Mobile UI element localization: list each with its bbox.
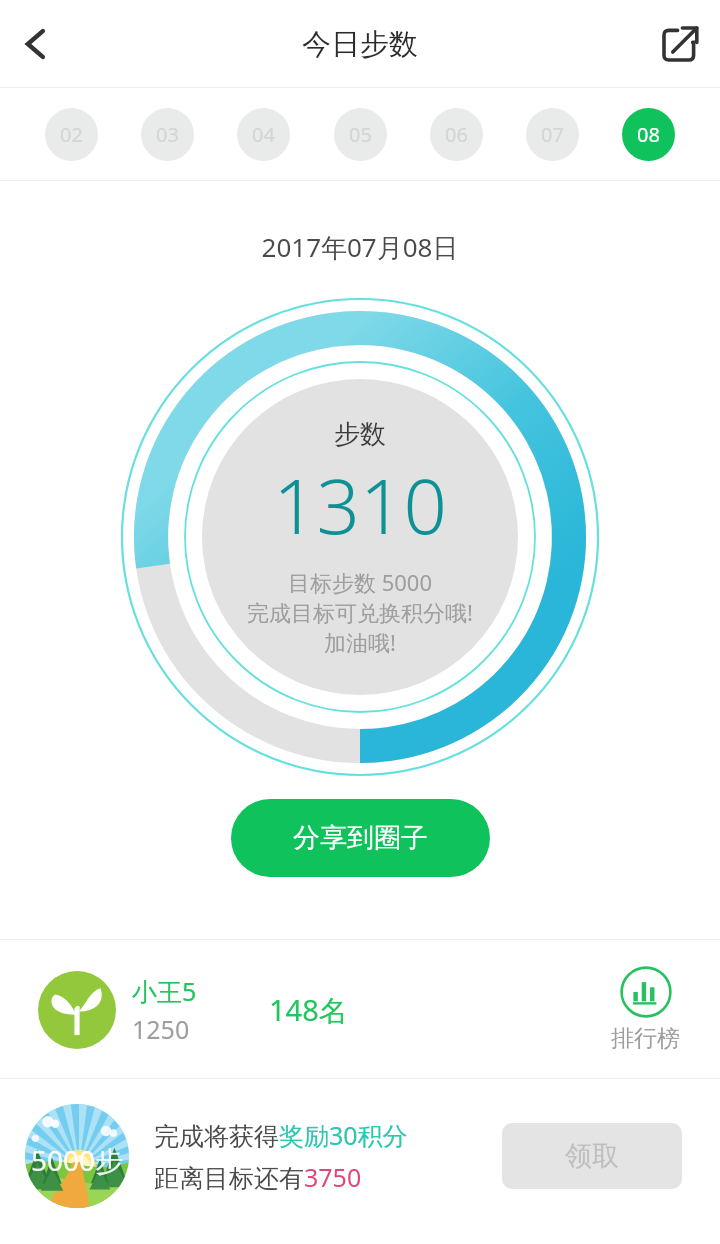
button[interactable]: 04: [237, 108, 290, 161]
button[interactable]: 07: [526, 108, 579, 161]
staticText: 07: [541, 121, 564, 148]
button[interactable]: 小王5: [0, 940, 720, 1079]
button[interactable]: 03: [141, 108, 194, 161]
button[interactable]: 02: [45, 108, 98, 161]
staticText: 5000步: [25, 1141, 129, 1179]
staticText: 08: [637, 121, 660, 148]
staticText: 完成将获得奖励30积分: [154, 1118, 408, 1152]
button[interactable]: Back: [0, 0, 72, 88]
staticText: 距离目标还有3750: [154, 1160, 362, 1194]
staticText: 05: [349, 121, 372, 148]
staticText: 领取: [565, 1139, 619, 1173]
button[interactable]: Share: [640, 0, 720, 88]
staticText: 加油哦!: [210, 627, 510, 657]
staticText: 分享到圈子: [293, 821, 428, 855]
button[interactable]: 分享到圈子: [231, 799, 490, 877]
staticText: 步数: [334, 418, 386, 451]
button[interactable]: 08: [622, 108, 675, 161]
staticText: 02: [60, 121, 83, 148]
staticText: 小王5: [132, 974, 197, 1008]
button[interactable]: 排行榜: [601, 962, 690, 1057]
button[interactable]: 05: [334, 108, 387, 161]
staticText: 今日步数: [302, 26, 418, 63]
button[interactable]: 领取: [502, 1123, 682, 1189]
staticText: 2017年07月08日: [0, 229, 720, 265]
staticText: 03: [156, 121, 179, 148]
staticText: 04: [252, 121, 275, 148]
staticText: 06: [445, 121, 468, 148]
staticText: 1310: [210, 453, 510, 557]
staticText: 目标步数 5000: [210, 567, 510, 597]
staticText: 完成目标可兑换积分哦!: [210, 597, 510, 627]
button[interactable]: 06: [430, 108, 483, 161]
staticText: 148名: [269, 990, 348, 1030]
staticText: 1250: [132, 1012, 190, 1046]
staticText: 排行榜: [611, 1024, 680, 1053]
